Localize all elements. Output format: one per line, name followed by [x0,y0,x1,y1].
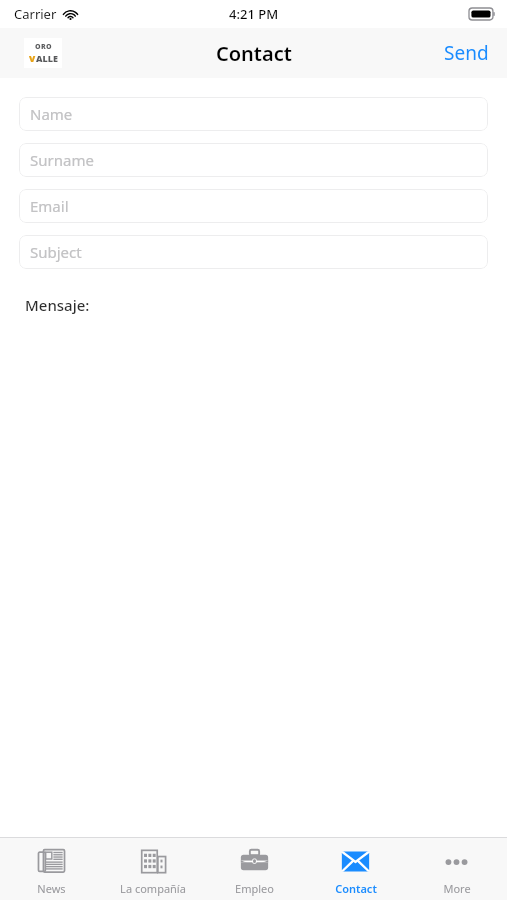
staticText: Carrier [14,5,57,23]
button[interactable]: Logo Oro Valle [24,38,62,68]
staticText: 4:21 PM [229,5,279,23]
button[interactable]: Empleo [204,838,305,900]
button[interactable]: Surname [19,143,488,177]
staticText: ORO [35,42,52,52]
button[interactable]: More [406,838,507,900]
button[interactable]: Email [19,189,488,223]
staticText: V [29,52,36,64]
staticText: Email [30,196,69,216]
button[interactable]: Name [19,97,488,131]
staticText: Send [444,40,489,66]
staticText: News [37,881,66,896]
staticText: Surname [30,150,94,170]
button[interactable]: Contact [305,838,406,900]
staticText: Subject [30,242,82,262]
staticText: Empleo [235,881,274,896]
button[interactable]: Subject [19,235,488,269]
button[interactable]: Send [426,28,507,78]
staticText: More [443,881,471,896]
staticText: Contact [335,881,377,896]
staticText: Contact [216,40,292,67]
staticText: Name [30,104,73,124]
staticText: Mensaje: [25,295,90,315]
staticText: ALLE [36,52,58,64]
button[interactable]: La compañía [102,838,204,900]
button[interactable]: News [0,838,102,900]
staticText: La compañía [120,881,186,896]
